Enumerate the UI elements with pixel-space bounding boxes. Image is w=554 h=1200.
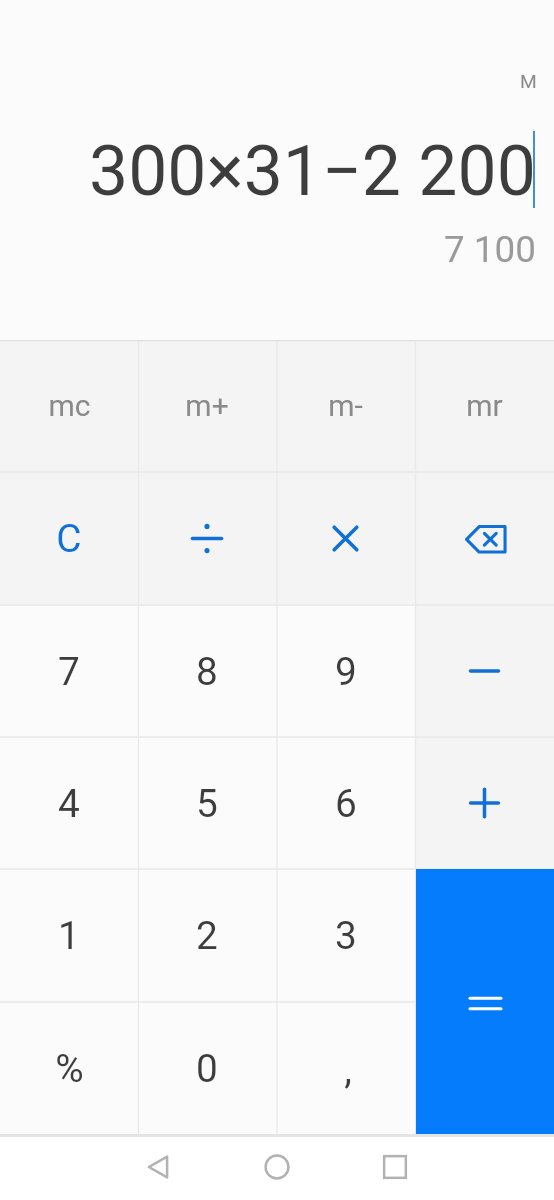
- button[interactable]: C: [0, 472, 138, 605]
- button[interactable]: 7: [0, 605, 138, 737]
- button[interactable]: Minus: [415, 605, 554, 737]
- staticText: 0: [196, 1046, 218, 1091]
- button[interactable]: m+: [138, 340, 276, 472]
- staticText: ,: [344, 1047, 352, 1092]
- button[interactable]: Home: [247, 1137, 307, 1197]
- button[interactable]: ,: [276, 1002, 415, 1134]
- button[interactable]: %: [0, 1002, 138, 1134]
- button[interactable]: 6: [276, 737, 415, 869]
- button[interactable]: m-: [276, 340, 415, 472]
- staticText: 5: [196, 781, 218, 826]
- staticText: 7 100: [444, 228, 536, 271]
- button[interactable]: 1: [0, 869, 138, 1002]
- button[interactable]: 2: [138, 869, 276, 1002]
- staticText: C: [56, 516, 82, 561]
- staticText: 1: [58, 913, 80, 958]
- button[interactable]: Equals: [416, 869, 554, 1135]
- staticText: mc: [48, 388, 91, 423]
- staticText: 4: [58, 781, 80, 826]
- staticText: %: [55, 1046, 84, 1091]
- button[interactable]: Multiply: [276, 472, 415, 605]
- button[interactable]: Backspace: [415, 472, 554, 605]
- button[interactable]: 0: [138, 1002, 276, 1134]
- staticText: m+: [185, 388, 229, 423]
- button[interactable]: 3: [276, 869, 415, 1002]
- staticText: 3: [335, 913, 357, 958]
- staticText: 7: [58, 649, 80, 694]
- staticText: mr: [466, 388, 503, 423]
- button[interactable]: Back: [128, 1137, 188, 1197]
- button[interactable]: mc: [0, 340, 138, 472]
- staticText: 300×31−2 200: [89, 130, 536, 212]
- staticText: M: [520, 70, 537, 93]
- button[interactable]: 4: [0, 737, 138, 869]
- button[interactable]: Divide: [138, 472, 276, 605]
- button[interactable]: mr: [415, 340, 554, 472]
- button[interactable]: Plus: [415, 737, 554, 869]
- staticText: 9: [335, 649, 357, 694]
- button[interactable]: Recents: [365, 1137, 425, 1197]
- button[interactable]: 9: [276, 605, 415, 737]
- button[interactable]: 5: [138, 737, 276, 869]
- staticText: 8: [196, 649, 218, 694]
- button[interactable]: 8: [138, 605, 276, 737]
- staticText: m-: [328, 388, 363, 423]
- staticText: 6: [335, 781, 357, 826]
- staticText: 2: [196, 913, 218, 958]
